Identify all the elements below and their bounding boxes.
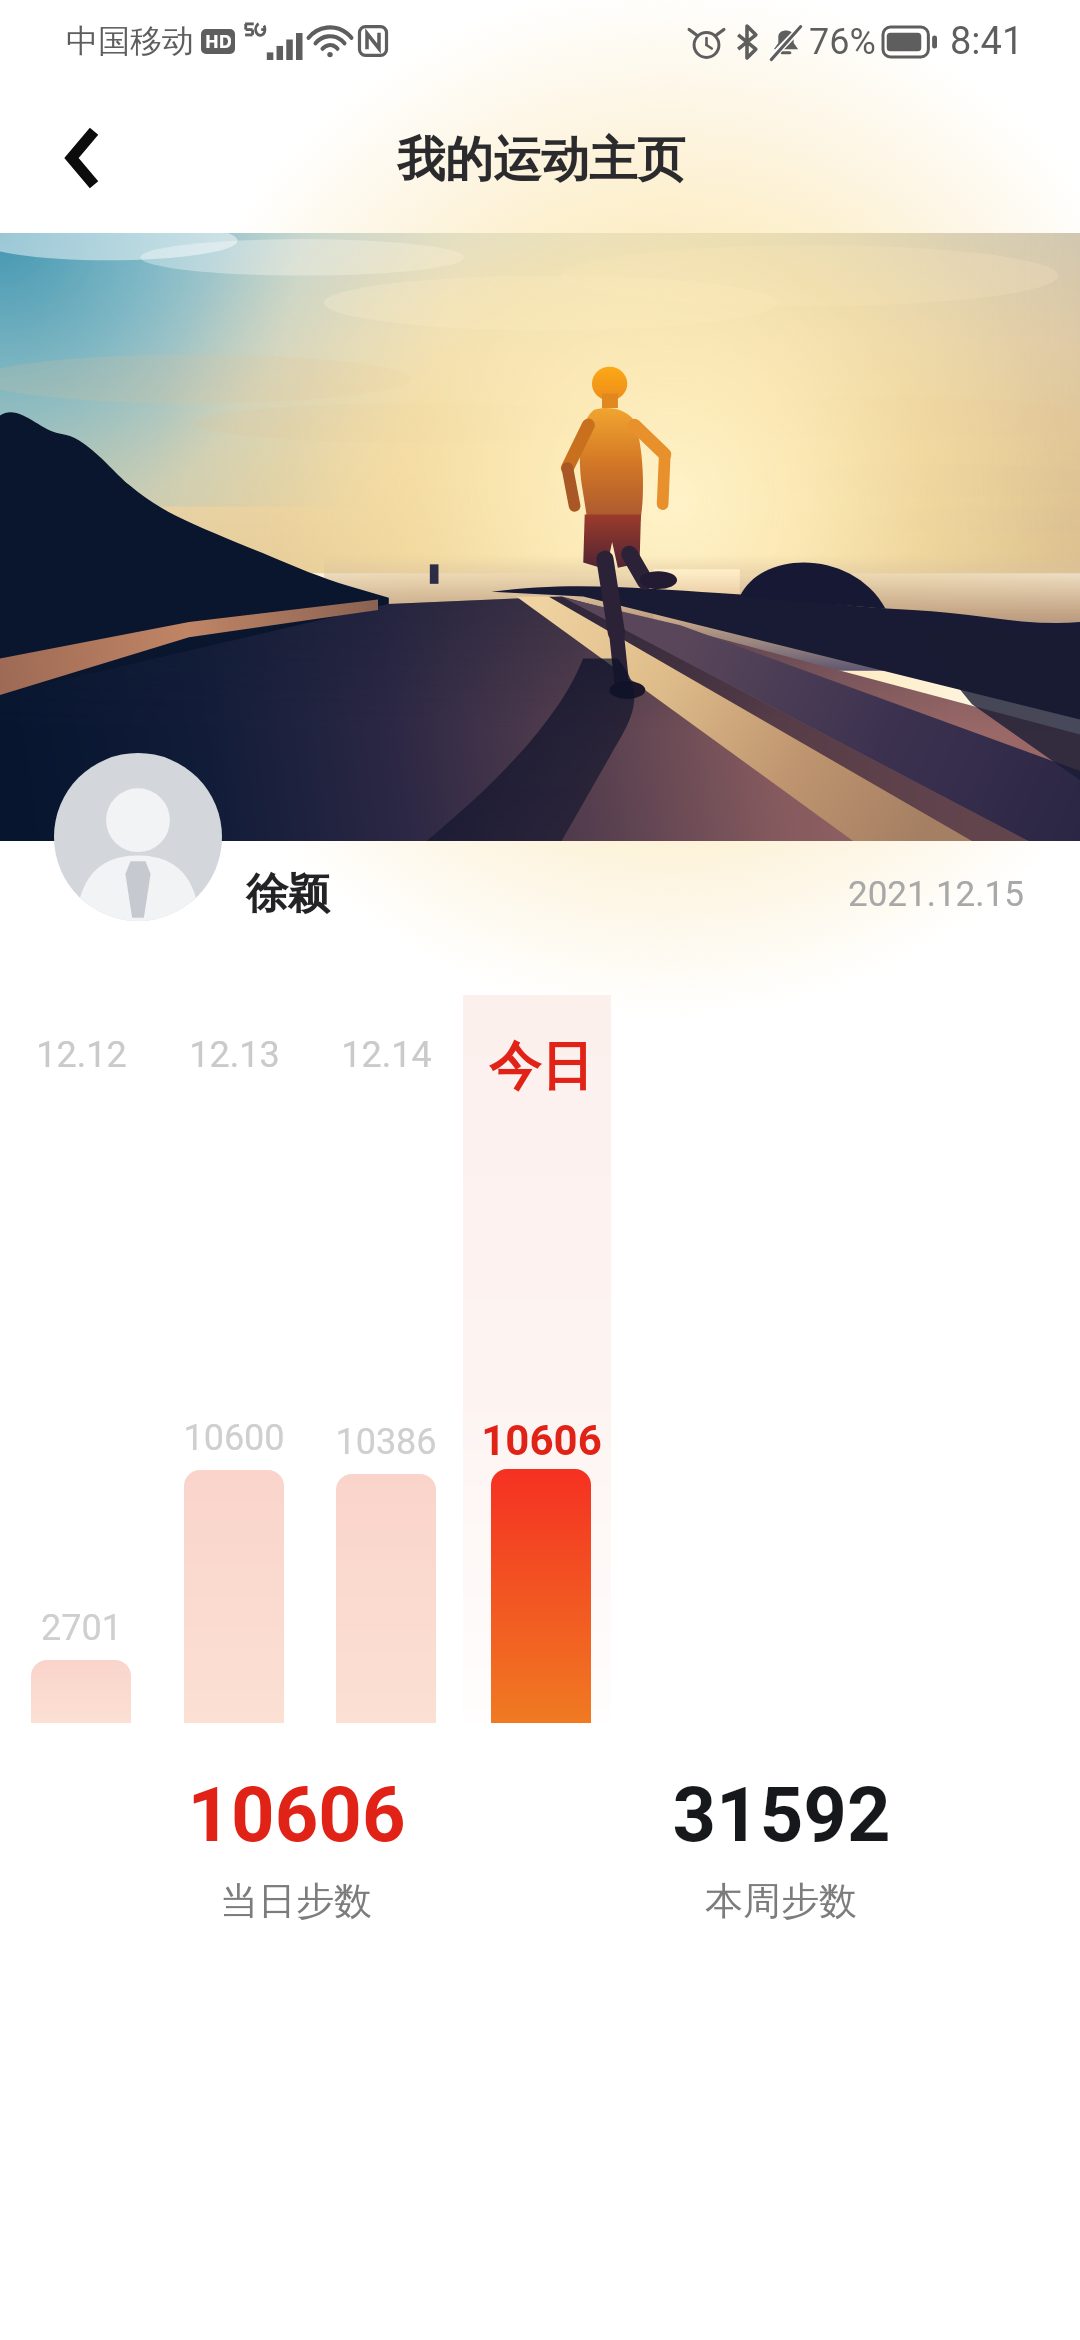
staticText: 徐颖 [246,868,330,921]
staticText: 2701 [41,1607,122,1649]
staticText: 8:41 [950,19,1024,64]
staticText: 10606 [481,1416,602,1465]
button[interactable]: 10606 [86,1770,506,1970]
staticText: 10606 [187,1770,406,1859]
staticText: HD [205,29,232,54]
staticText: 当日步数 [220,1877,372,1925]
button[interactable] [336,1474,436,1723]
button[interactable]: 31592 [571,1770,991,1970]
staticText: 12.12 [36,1034,127,1076]
staticText: 中国移动 [66,21,194,61]
staticText: 2021.12.15 [848,874,1024,915]
button[interactable] [491,1469,591,1723]
staticText: 10386 [335,1421,437,1463]
staticText: 10600 [183,1417,285,1459]
button[interactable] [184,1470,284,1723]
staticText: 12.13 [189,1034,280,1076]
staticText: 本周步数 [705,1877,857,1925]
button[interactable]: 返回 [21,118,141,198]
staticText: 我的运动主页 [397,130,685,190]
staticText: 76% [809,21,876,63]
staticText: 今日 [489,1034,593,1100]
staticText: 12.14 [341,1034,432,1076]
button[interactable] [31,1660,131,1723]
staticText: 31592 [672,1770,891,1859]
button[interactable]: 头像 [54,753,222,921]
